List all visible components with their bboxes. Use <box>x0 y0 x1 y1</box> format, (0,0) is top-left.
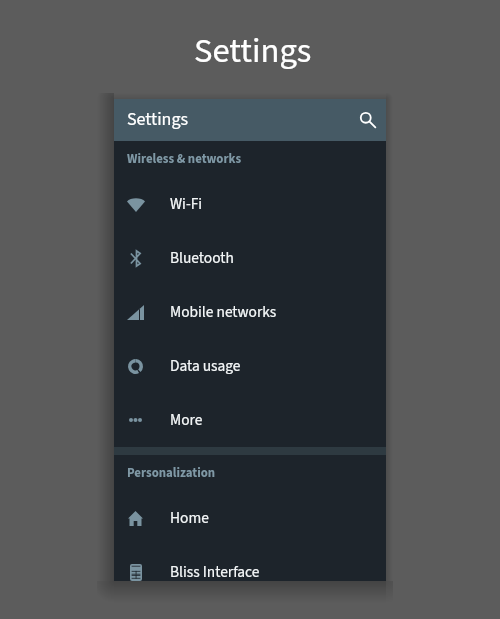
staticText: Bliss Interface <box>170 561 260 581</box>
button[interactable]: Home <box>114 491 386 545</box>
button[interactable]: Wi-Fi <box>114 177 386 231</box>
button[interactable]: Mobile networks <box>114 285 386 339</box>
staticText: Home <box>170 507 209 529</box>
button[interactable]: More <box>114 393 386 447</box>
button[interactable]: Search <box>353 105 383 135</box>
staticText: Settings <box>194 27 312 76</box>
button[interactable]: Bluetooth <box>114 231 386 285</box>
staticText: Settings <box>127 107 189 133</box>
staticText: More <box>170 409 203 431</box>
button[interactable]: Data usage <box>114 339 386 393</box>
staticText: Wireless & networks <box>127 150 242 168</box>
staticText: Data usage <box>170 355 241 377</box>
staticText: Wi-Fi <box>170 193 203 215</box>
staticText: Bluetooth <box>170 247 234 269</box>
staticText: Personalization <box>127 464 216 482</box>
staticText: Mobile networks <box>170 301 277 323</box>
button[interactable]: Bliss Interface <box>114 545 386 581</box>
